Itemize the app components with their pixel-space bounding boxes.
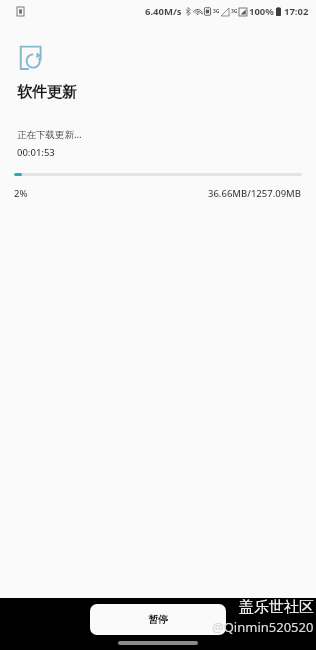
- staticText: @Qinmin520520: [212, 618, 314, 636]
- button[interactable]: Home: [118, 641, 198, 645]
- staticText: 100%: [249, 5, 274, 18]
- button[interactable]: 暂停: [90, 604, 226, 635]
- staticText: 正在下载更新…: [17, 128, 82, 141]
- staticText: 17:02: [284, 5, 309, 18]
- staticText: 00:01:53: [17, 146, 55, 159]
- staticText: 36.66MB/1257.09MB: [208, 187, 302, 200]
- staticText: 软件更新: [17, 83, 77, 102]
- staticText: 盖乐世社区: [239, 598, 314, 617]
- staticText: 3G: [213, 8, 220, 15]
- staticText: 6.40M/s: [145, 5, 182, 18]
- staticText: 暂停: [148, 613, 168, 626]
- staticText: 3G: [231, 8, 238, 15]
- staticText: 2%: [14, 187, 28, 200]
